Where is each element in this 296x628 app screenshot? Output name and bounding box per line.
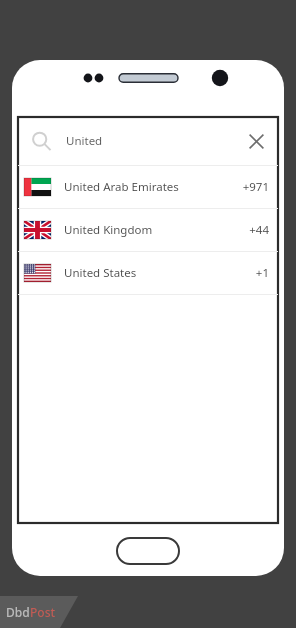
button[interactable]: United xyxy=(18,117,278,165)
button[interactable]: United States xyxy=(18,252,278,294)
staticText: Post xyxy=(30,604,56,620)
staticText: United States xyxy=(64,265,137,281)
button[interactable]: Home xyxy=(117,538,179,564)
staticText: +1 xyxy=(255,265,269,281)
button[interactable]: Clear search xyxy=(239,124,273,158)
staticText: +971 xyxy=(242,179,269,195)
staticText: +44 xyxy=(249,222,269,238)
button[interactable]: United Kingdom xyxy=(18,209,278,251)
staticText: United Kingdom xyxy=(64,222,153,238)
staticText: United xyxy=(66,133,103,149)
button[interactable]: United Arab Emirates xyxy=(18,166,278,208)
staticText: United Arab Emirates xyxy=(64,179,179,195)
staticText: Dbd xyxy=(6,604,30,620)
